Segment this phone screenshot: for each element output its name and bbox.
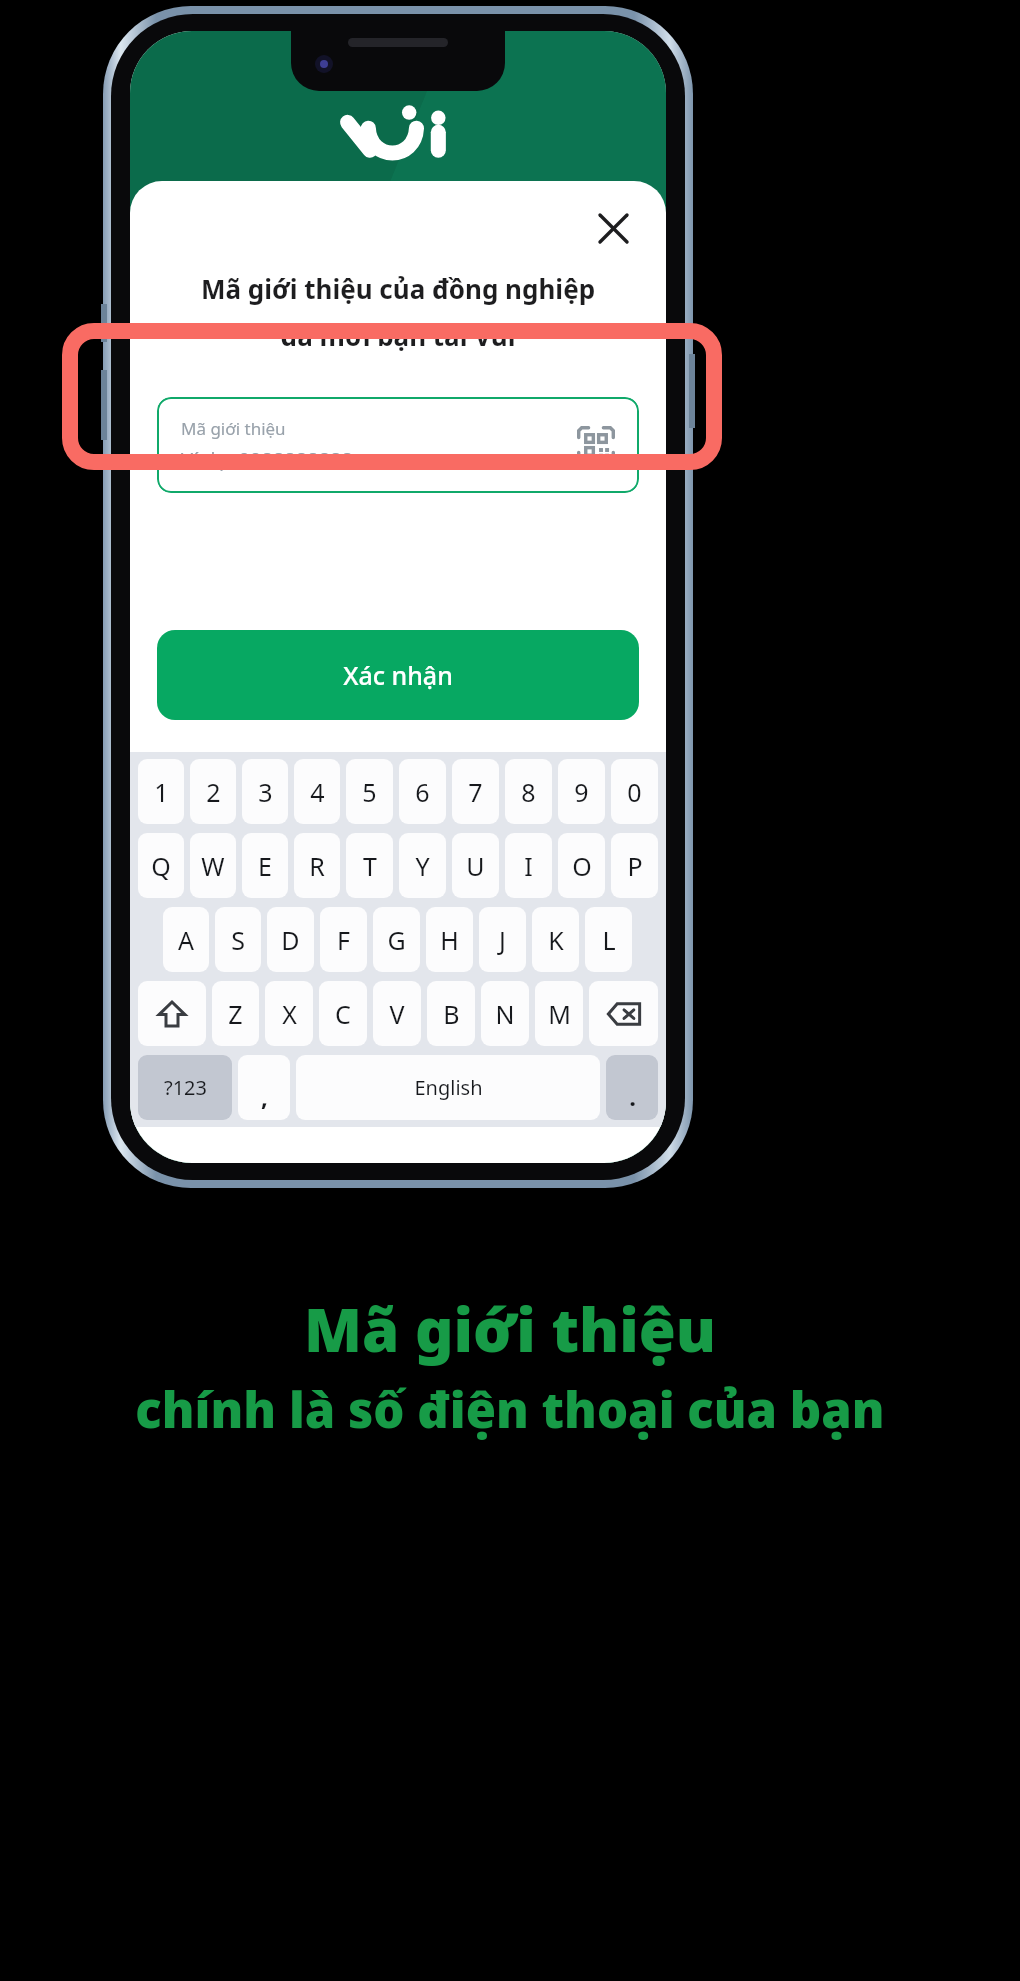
button[interactable]: F: [320, 907, 367, 972]
staticText: W: [201, 849, 225, 883]
button[interactable]: A: [163, 907, 209, 972]
button[interactable]: ?123: [138, 1055, 232, 1120]
staticText: C: [335, 997, 351, 1031]
button[interactable]: Xác nhận: [157, 630, 639, 720]
button[interactable]: S: [215, 907, 261, 972]
staticText: 8: [521, 775, 536, 809]
staticText: O: [572, 849, 592, 883]
button[interactable]: 4: [294, 759, 340, 824]
staticText: N: [495, 997, 515, 1031]
staticText: A: [178, 923, 194, 957]
staticText: L: [602, 923, 616, 957]
staticText: H: [440, 923, 459, 957]
staticText: Y: [415, 849, 430, 883]
staticText: K: [548, 923, 564, 957]
button[interactable]: X: [265, 981, 313, 1046]
staticText: 9: [574, 775, 589, 809]
staticText: 6: [415, 775, 430, 809]
button[interactable]: B: [427, 981, 475, 1046]
button[interactable]: E: [242, 833, 288, 898]
staticText: ,: [261, 1080, 268, 1113]
staticText: .: [629, 1080, 636, 1113]
staticText: F: [337, 923, 350, 957]
staticText: 4: [310, 775, 325, 809]
staticText: E: [258, 849, 272, 883]
button[interactable]: 2: [190, 759, 236, 824]
staticText: chính là số điện thoại của bạn: [0, 1376, 1020, 1443]
staticText: U: [466, 849, 485, 883]
staticText: X: [282, 997, 297, 1031]
button[interactable]: 6: [399, 759, 446, 824]
staticText: 1: [154, 775, 169, 809]
staticText: I: [524, 849, 533, 883]
button[interactable]: Scan QR code: [573, 422, 619, 468]
button[interactable]: 9: [558, 759, 605, 824]
button[interactable]: P: [611, 833, 658, 898]
staticText: 3: [258, 775, 273, 809]
staticText: Q: [151, 849, 171, 883]
button[interactable]: 1: [138, 759, 184, 824]
staticText: M: [548, 997, 571, 1031]
button[interactable]: 3: [242, 759, 288, 824]
button[interactable]: Z: [212, 981, 259, 1046]
button[interactable]: Mã giới thiệu: [157, 397, 639, 493]
button[interactable]: Shift: [138, 981, 206, 1046]
staticText: English: [414, 1074, 483, 1101]
button[interactable]: R: [294, 833, 340, 898]
button[interactable]: V: [373, 981, 421, 1046]
button[interactable]: I: [505, 833, 552, 898]
staticText: 2: [206, 775, 221, 809]
button[interactable]: Y: [399, 833, 446, 898]
staticText: Mã giới thiệu của đồng nghiệp: [130, 271, 666, 306]
staticText: D: [281, 923, 300, 957]
staticText: Z: [228, 997, 243, 1031]
staticText: P: [627, 849, 643, 883]
button[interactable]: Backspace: [589, 981, 658, 1046]
button[interactable]: K: [532, 907, 579, 972]
staticText: R: [309, 849, 325, 883]
button[interactable]: L: [585, 907, 632, 972]
button[interactable]: G: [373, 907, 420, 972]
staticText: ?123: [164, 1074, 207, 1101]
staticText: V: [389, 997, 405, 1031]
button[interactable]: .: [606, 1055, 658, 1120]
button[interactable]: T: [346, 833, 393, 898]
button[interactable]: O: [558, 833, 605, 898]
staticText: G: [387, 923, 406, 957]
staticText: Xác nhận: [343, 658, 453, 692]
staticText: đã mời bạn tải Vui: [130, 318, 666, 353]
button[interactable]: H: [426, 907, 473, 972]
button[interactable]: Q: [138, 833, 184, 898]
button[interactable]: U: [452, 833, 499, 898]
staticText: Ví dụ: 0988888888: [181, 446, 353, 473]
button[interactable]: J: [479, 907, 526, 972]
staticText: 7: [468, 775, 483, 809]
staticText: 0: [627, 775, 642, 809]
staticText: J: [499, 923, 506, 957]
button[interactable]: 8: [505, 759, 552, 824]
button[interactable]: 5: [346, 759, 393, 824]
staticText: B: [443, 997, 460, 1031]
staticText: 5: [362, 775, 377, 809]
staticText: Mã giới thiệu: [0, 1288, 1020, 1370]
button[interactable]: ,: [238, 1055, 290, 1120]
button[interactable]: English: [296, 1055, 600, 1120]
staticText: T: [363, 849, 377, 883]
button[interactable]: Close: [586, 201, 640, 255]
button[interactable]: C: [319, 981, 367, 1046]
button[interactable]: 7: [452, 759, 499, 824]
staticText: S: [231, 923, 245, 957]
button[interactable]: M: [535, 981, 583, 1046]
button[interactable]: N: [481, 981, 529, 1046]
button[interactable]: W: [190, 833, 236, 898]
button[interactable]: 0: [611, 759, 658, 824]
button[interactable]: D: [267, 907, 314, 972]
staticText: Mã giới thiệu: [181, 417, 286, 440]
